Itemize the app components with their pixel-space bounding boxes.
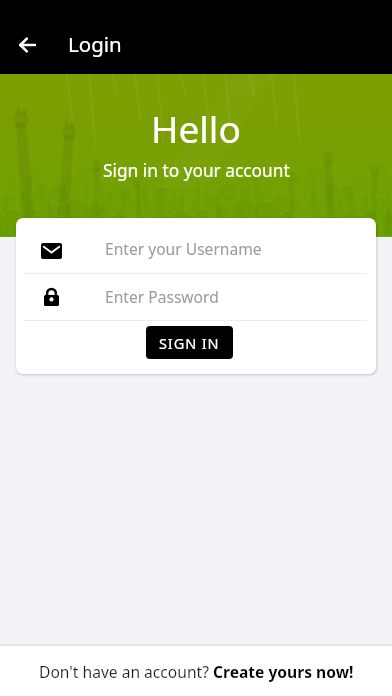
staticText: Enter Password — [105, 286, 219, 307]
staticText: Login — [68, 30, 122, 58]
staticText: Create yours now! — [213, 661, 354, 682]
button[interactable]: Enter Password — [16, 273, 376, 320]
button[interactable]: SIGN IN — [146, 326, 233, 359]
staticText: Hello — [151, 103, 241, 153]
staticText: Sign in to your account — [103, 159, 290, 183]
staticText: Enter your Username — [105, 238, 262, 259]
staticText: SIGN IN — [159, 333, 220, 353]
button[interactable]: Back — [3, 21, 51, 69]
staticText: Don't have an account? — [39, 661, 213, 682]
button[interactable]: Don't have an account? — [0, 646, 392, 696]
button[interactable]: Enter your Username — [16, 225, 376, 272]
